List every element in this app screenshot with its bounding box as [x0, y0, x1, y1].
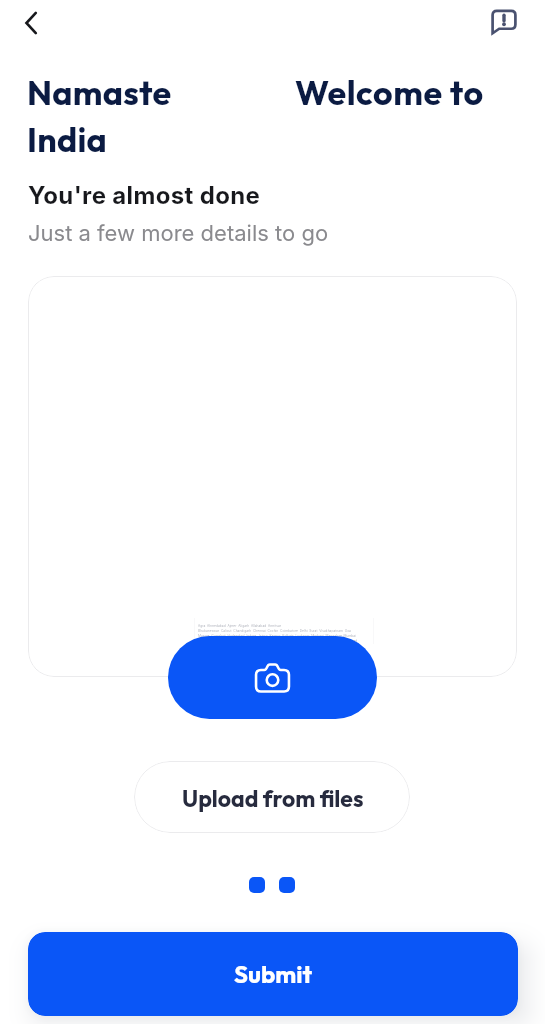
button[interactable]: Back — [13, 5, 49, 41]
staticText: Submit — [234, 959, 312, 989]
button[interactable]: Report an issue — [486, 4, 522, 40]
staticText: Agra Ahmedabad Ajmer Aligarh Allahabad A… — [198, 624, 358, 643]
staticText: Just a few more details to go — [28, 220, 329, 247]
staticText: Upload from files — [182, 784, 364, 813]
button[interactable]: Upload from files — [134, 761, 410, 833]
staticText: Namaste India — [27, 71, 172, 161]
staticText: Welcome to — [295, 71, 484, 114]
button[interactable]: Take photo — [168, 636, 377, 719]
staticText: You're almost done — [28, 181, 261, 210]
button[interactable]: Submit — [28, 932, 518, 1016]
